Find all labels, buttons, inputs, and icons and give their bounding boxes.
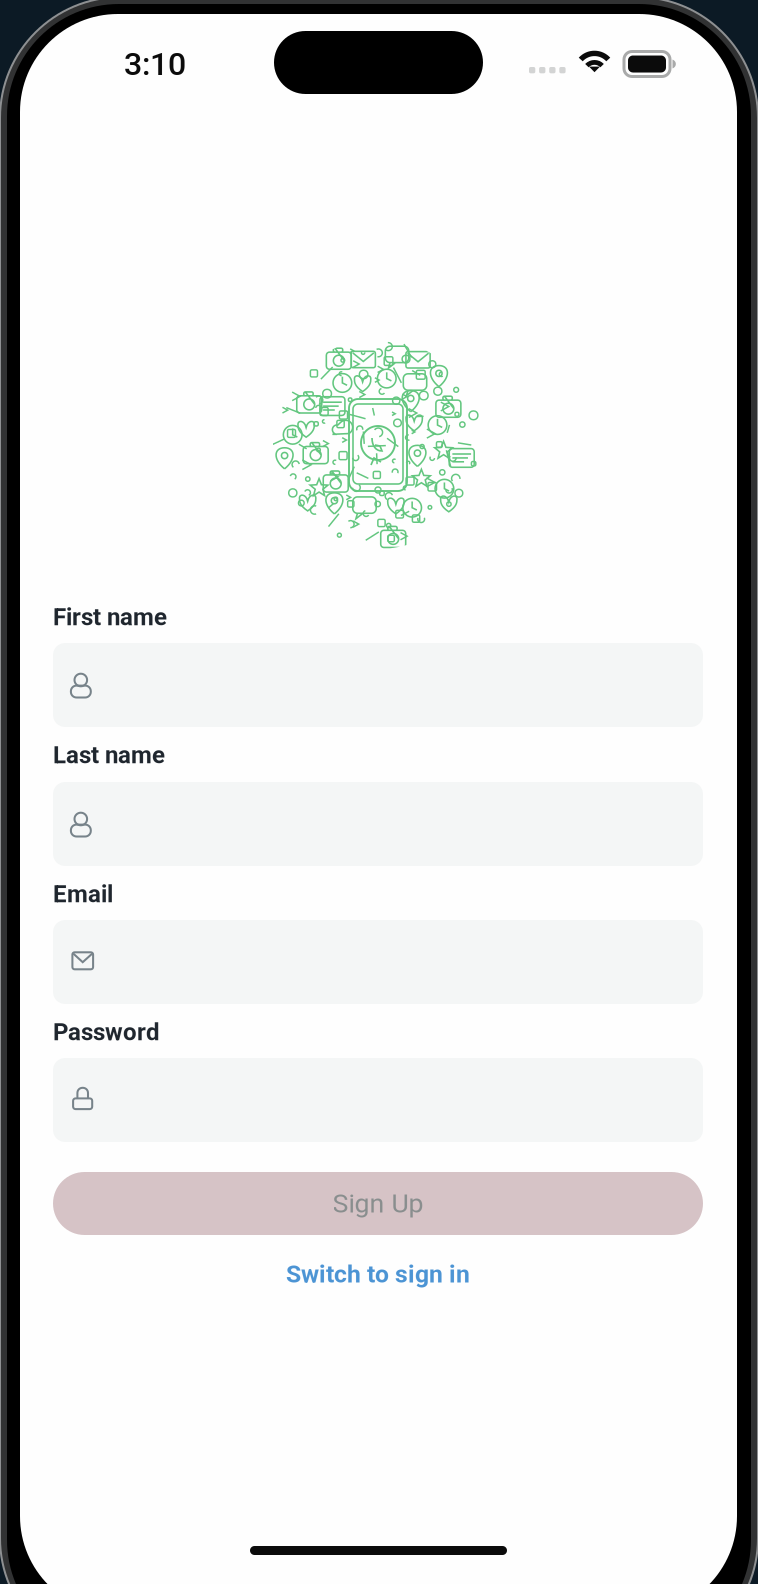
staticText: Last name	[53, 741, 165, 769]
staticText: Switch to sign in	[286, 1259, 470, 1288]
staticText: Sign Up	[332, 1188, 423, 1219]
button[interactable]	[53, 1058, 703, 1142]
button[interactable]: Switch to sign in	[53, 1259, 703, 1289]
button[interactable]	[53, 920, 703, 1004]
staticText: 3:10	[124, 45, 186, 83]
staticText: First name	[53, 603, 167, 631]
button[interactable]	[53, 782, 703, 866]
button[interactable]: Sign Up	[53, 1172, 703, 1235]
button[interactable]	[53, 643, 703, 727]
staticText: Password	[53, 1018, 160, 1046]
staticText: Email	[53, 880, 113, 908]
